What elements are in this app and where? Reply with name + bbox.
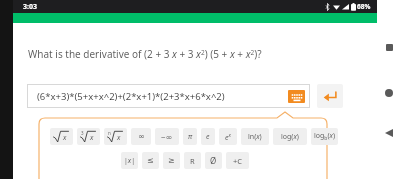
button[interactable]: Infinity <box>131 128 151 145</box>
staticText: π <box>188 132 193 142</box>
button[interactable]: Back <box>383 127 395 139</box>
staticText: e <box>206 132 210 142</box>
staticText: |x| <box>124 156 136 166</box>
button[interactable]: Cube root <box>77 128 100 145</box>
staticText: −∞ <box>161 131 173 142</box>
button[interactable]: e to the x <box>219 128 237 145</box>
button[interactable]: Plus constant C <box>226 152 249 169</box>
staticText: What is the derivative of (2 + 3 x + 3 x… <box>28 47 262 61</box>
staticText: x <box>117 133 121 143</box>
staticText: n <box>108 130 111 136</box>
staticText: 3 <box>81 130 84 136</box>
button[interactable]: Logarithm base 10 <box>273 128 307 145</box>
staticText: R <box>190 156 195 166</box>
staticText: ≤ <box>147 156 154 165</box>
button[interactable]: Pi <box>183 128 197 145</box>
staticText: 68% <box>357 2 371 11</box>
staticText: Ø <box>210 155 217 166</box>
button[interactable]: Empty set <box>205 152 222 169</box>
button[interactable]: Natural logarithm <box>241 128 269 145</box>
staticText: logb(x) <box>314 131 336 142</box>
button[interactable]: Nth root <box>104 128 127 145</box>
staticText: ≥ <box>168 156 175 165</box>
button[interactable]: Home <box>383 87 395 99</box>
button[interactable]: Less than or equal <box>142 152 159 169</box>
button[interactable]: Square root <box>50 128 73 145</box>
staticText: x <box>63 133 67 143</box>
staticText: ∞ <box>138 132 145 141</box>
button[interactable]: Submit answer <box>317 84 343 108</box>
button[interactable]: (6*x+3)*(5+x+x^2)+(2*x+1)*(2+3*x+6*x^2) <box>27 84 310 108</box>
button[interactable]: Euler's number e <box>201 128 215 145</box>
button[interactable]: Recent apps <box>383 41 395 53</box>
button[interactable]: Greater than or equal <box>163 152 180 169</box>
button[interactable]: Negative infinity <box>155 128 179 145</box>
staticText: ex <box>225 132 231 142</box>
button[interactable]: Show keyboard <box>288 90 305 103</box>
staticText: log(x) <box>281 132 299 142</box>
button[interactable]: Logarithm base b <box>311 128 338 145</box>
staticText: (6*x+3)*(5+x+x^2)+(2*x+1)*(2+3*x+6*x^2) <box>37 90 225 103</box>
staticText: +C <box>233 156 243 166</box>
staticText: ln(x) <box>248 132 262 142</box>
button[interactable]: Real numbers <box>184 152 201 169</box>
button[interactable]: Absolute value <box>121 152 138 169</box>
staticText: x <box>90 133 94 143</box>
staticText: 3:03 <box>23 2 37 12</box>
